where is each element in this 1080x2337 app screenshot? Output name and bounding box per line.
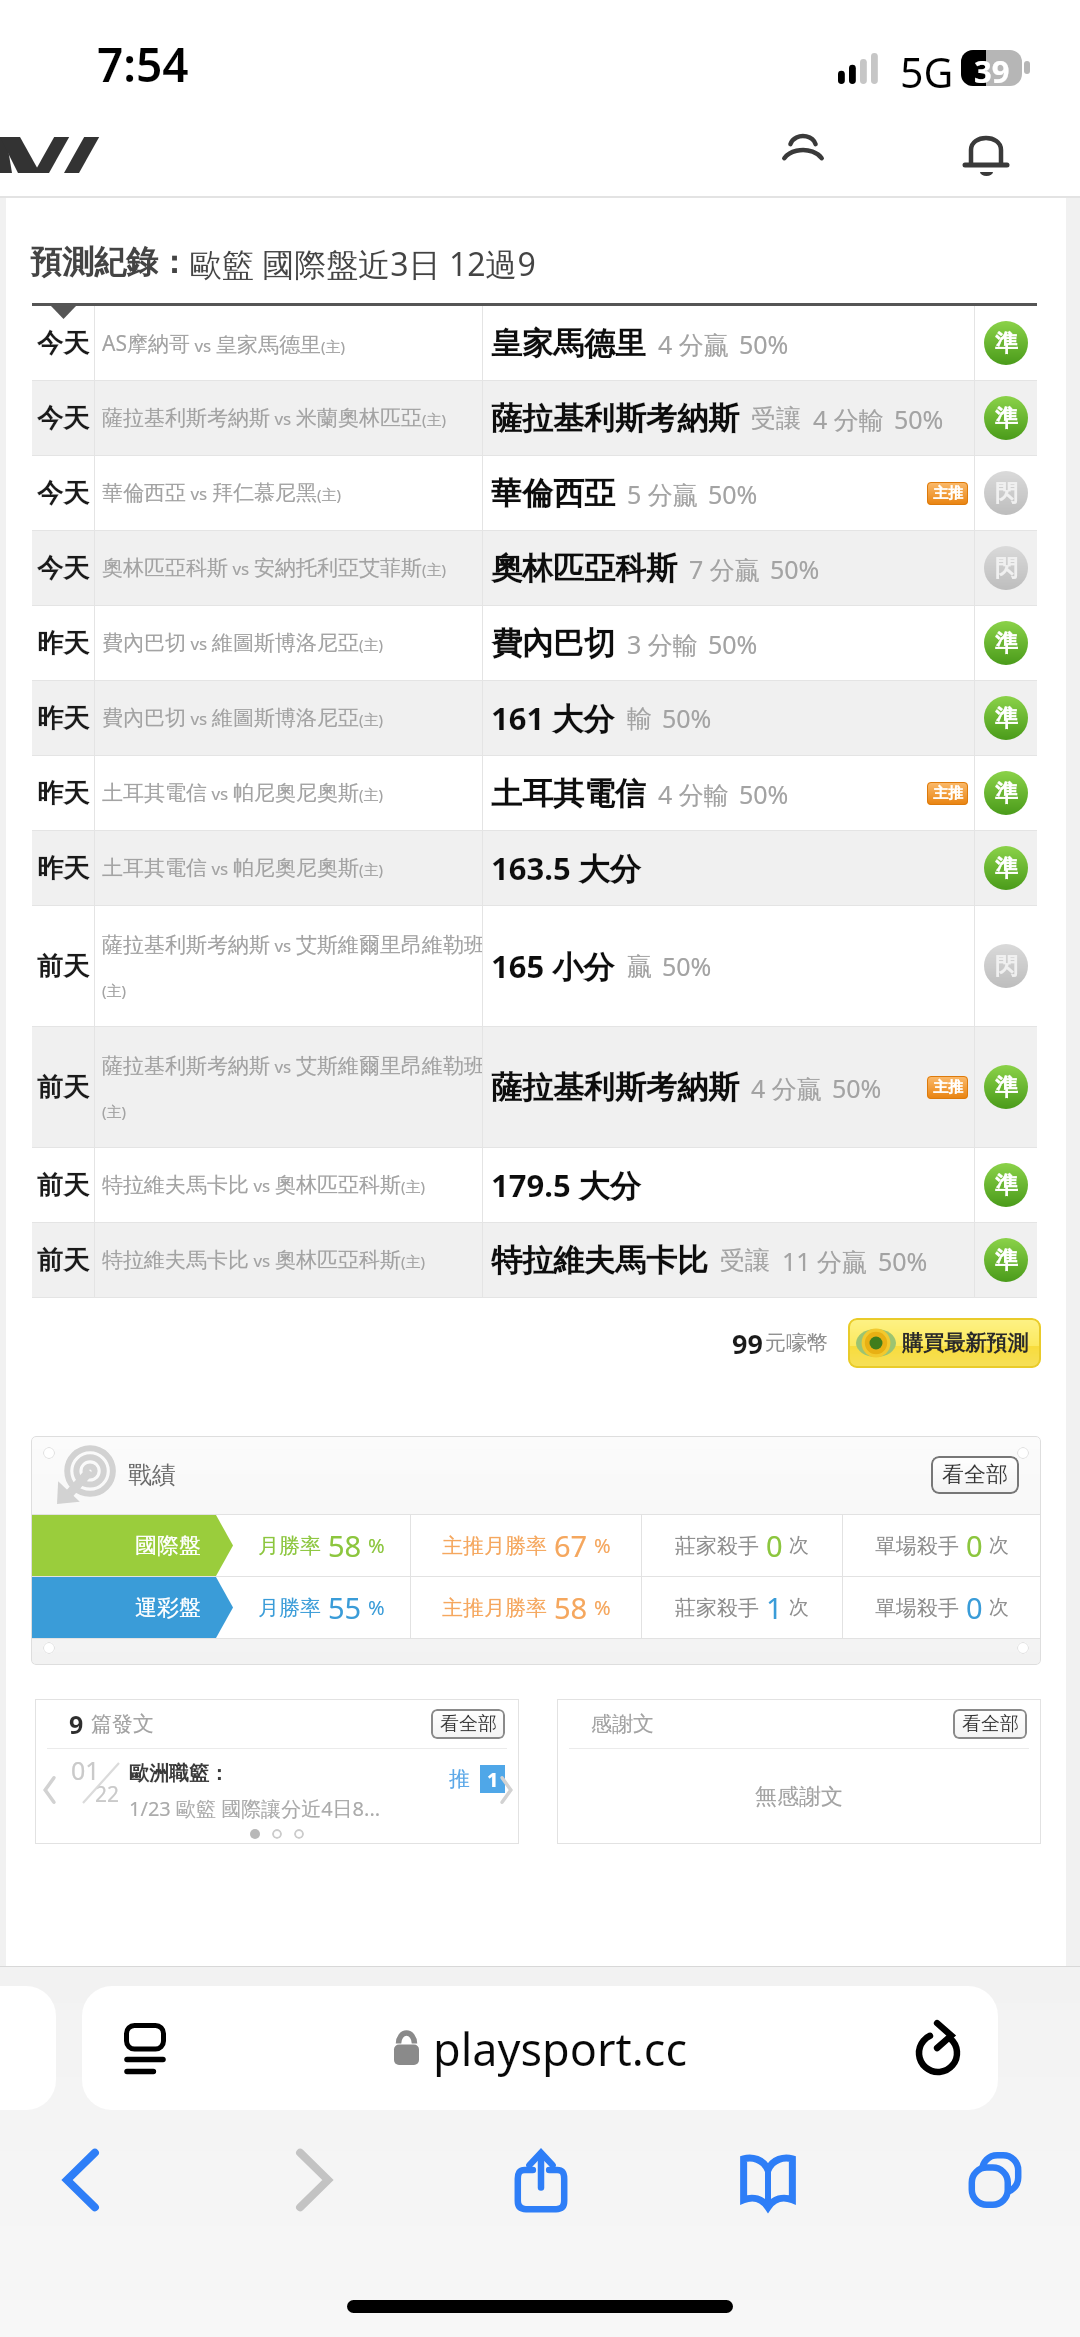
- staticText: 運彩盤: [135, 1594, 201, 1622]
- button[interactable]: Account: [760, 112, 846, 198]
- staticText: 主推月勝率: [442, 1533, 547, 1559]
- staticText: 179.5 大分: [491, 1164, 641, 1206]
- staticText: (主): [102, 980, 127, 1000]
- staticText: %: [368, 1532, 385, 1559]
- staticText: 艾斯維爾里昂維勒班: [296, 932, 482, 958]
- staticText: 閃: [995, 952, 1018, 981]
- staticText: 0: [966, 1588, 983, 1627]
- staticText: 昨天: [37, 777, 89, 810]
- staticText: 50%: [662, 701, 712, 735]
- staticText: 4 分輸: [813, 402, 884, 436]
- staticText: 163.5 大分: [491, 847, 641, 889]
- button[interactable]: Tabs: [941, 2126, 1049, 2234]
- staticText: 67: [554, 1526, 588, 1565]
- staticText: 帕尼奧尼奧斯: [233, 855, 359, 881]
- staticText: 1: [766, 1588, 783, 1627]
- staticText: (主): [359, 709, 384, 729]
- staticText: 今天: [37, 552, 89, 585]
- staticText: 主推月勝率: [442, 1595, 547, 1621]
- staticText: 50%: [739, 327, 789, 361]
- staticText: 拜仁慕尼黑: [212, 480, 317, 506]
- button[interactable]: Back: [27, 2126, 135, 2234]
- staticText: 今天: [37, 477, 89, 510]
- staticText: 58: [554, 1588, 588, 1627]
- staticText: 次: [789, 1533, 809, 1558]
- staticText: 華倫西亞: [491, 474, 615, 513]
- staticText: 161 大分: [491, 697, 615, 739]
- staticText: (主): [317, 484, 342, 504]
- staticText: 單場殺手: [875, 1595, 959, 1621]
- staticText: (主): [401, 1176, 426, 1196]
- staticText: 特拉維夫馬卡比: [491, 1241, 708, 1280]
- button[interactable]: 看全部: [953, 1709, 1027, 1739]
- staticText: 輸: [627, 703, 652, 734]
- button[interactable]: 看全部: [431, 1709, 505, 1739]
- staticText: vs: [270, 1055, 296, 1078]
- button[interactable]: 看全部: [931, 1456, 1019, 1494]
- staticText: 準: [995, 854, 1018, 883]
- staticText: 米蘭奧林匹亞: [296, 405, 422, 431]
- staticText: (主): [422, 559, 447, 579]
- other: Reload: [916, 2021, 960, 2075]
- staticText: 前天: [37, 1169, 89, 1202]
- staticText: vs: [207, 857, 233, 880]
- staticText: 受讓: [720, 1245, 770, 1276]
- staticText: 1: [487, 1766, 499, 1793]
- staticText: 推: [449, 1766, 470, 1792]
- staticText: 維圖斯博洛尼亞: [212, 705, 359, 731]
- staticText: 主推: [933, 484, 963, 503]
- staticText: 華倫西亞: [102, 480, 186, 506]
- staticText: (主): [102, 1101, 127, 1121]
- staticText: 費內巴切: [102, 705, 186, 731]
- button[interactable]: Page Settings: [82, 1986, 998, 2110]
- staticText: 次: [989, 1533, 1009, 1558]
- staticText: 歐洲職籃：: [129, 1761, 229, 1786]
- staticText: 預測紀錄：: [30, 242, 190, 282]
- staticText: vs: [186, 632, 212, 655]
- button[interactable]: Bookmarks: [714, 2126, 822, 2234]
- button[interactable]: Notifications: [945, 112, 1031, 198]
- staticText: vs: [207, 782, 233, 805]
- staticText: 50%: [662, 949, 712, 983]
- staticText: (主): [359, 859, 384, 879]
- button[interactable]: Share: [487, 2126, 595, 2234]
- button[interactable]: Forward: [260, 2126, 368, 2234]
- staticText: vs: [249, 1174, 275, 1197]
- staticText: 次: [789, 1595, 809, 1620]
- staticText: 準: [995, 704, 1018, 733]
- staticText: 皇家馬德里: [216, 332, 321, 358]
- staticText: 維圖斯博洛尼亞: [212, 630, 359, 656]
- staticText: 22: [95, 1780, 120, 1809]
- staticText: 4 分贏: [658, 327, 729, 361]
- staticText: 土耳其電信: [491, 774, 646, 813]
- staticText: 50%: [878, 1244, 928, 1278]
- staticText: 50%: [832, 1071, 882, 1105]
- staticText: 看全部: [942, 1461, 1008, 1489]
- staticText: 月勝率: [258, 1595, 321, 1621]
- staticText: 奧林匹亞科斯: [275, 1172, 401, 1198]
- staticText: 55: [328, 1588, 362, 1627]
- staticText: 單場殺手: [875, 1533, 959, 1559]
- staticText: 今天: [37, 327, 89, 360]
- staticText: 贏: [627, 951, 652, 982]
- button[interactable]: 購買最新預測: [848, 1318, 1041, 1368]
- staticText: 準: [995, 629, 1018, 658]
- staticText: 莊家殺手: [675, 1595, 759, 1621]
- staticText: (主): [359, 784, 384, 804]
- staticText: 購買最新預測: [902, 1330, 1028, 1356]
- staticText: 看全部: [440, 1712, 497, 1736]
- staticText: 費內巴切: [491, 624, 615, 663]
- staticText: 4 分輸: [658, 777, 729, 811]
- staticText: 帕尼奧尼奧斯: [233, 780, 359, 806]
- staticText: (主): [422, 409, 447, 429]
- staticText: 篇發文: [91, 1711, 154, 1737]
- staticText: 1/23 歐籃 國際讓分近4日8...: [129, 1795, 381, 1822]
- staticText: 前天: [37, 1071, 89, 1104]
- staticText: %: [368, 1594, 385, 1621]
- staticText: 7 分贏: [689, 552, 760, 586]
- staticText: 50%: [708, 627, 758, 661]
- staticText: 安納托利亞艾菲斯: [254, 555, 422, 581]
- staticText: 58: [328, 1526, 362, 1565]
- staticText: 主推: [933, 1078, 963, 1097]
- staticText: 昨天: [37, 702, 89, 735]
